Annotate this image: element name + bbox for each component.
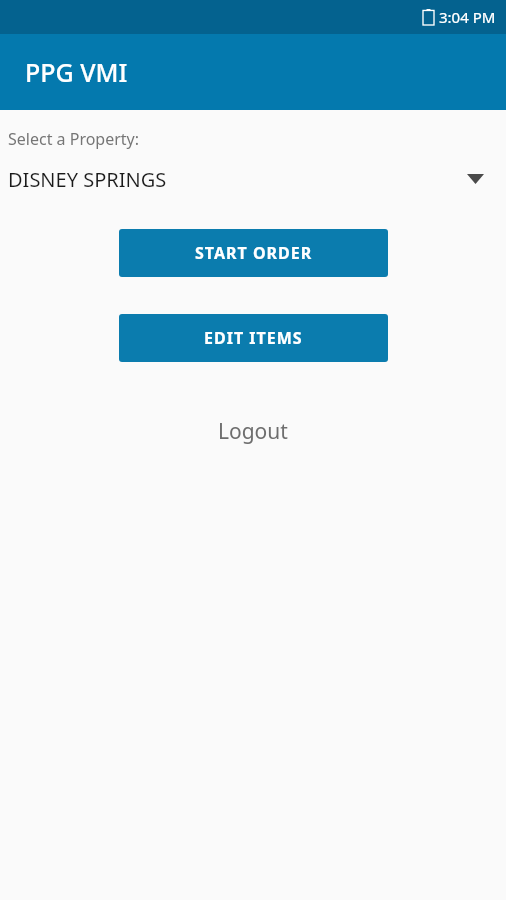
- staticText: Select a Property:: [8, 128, 140, 150]
- other: Battery: [423, 9, 434, 25]
- staticText: 3:04 PM: [439, 7, 496, 27]
- staticText: Logout: [218, 417, 288, 446]
- button[interactable]: Logout: [194, 409, 312, 454]
- staticText: EDIT ITEMS: [204, 327, 303, 349]
- button[interactable]: START ORDER: [119, 229, 388, 277]
- button[interactable]: EDIT ITEMS: [119, 314, 388, 362]
- staticText: DISNEY SPRINGS: [8, 166, 467, 193]
- staticText: PPG VMI: [25, 55, 128, 89]
- staticText: START ORDER: [195, 242, 313, 264]
- button[interactable]: DISNEY SPRINGS: [0, 160, 506, 198]
- other: Open property dropdown: [467, 174, 484, 184]
